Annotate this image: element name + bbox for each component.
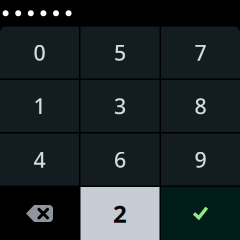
button[interactable]: 3: [80, 80, 159, 132]
staticText: 0: [33, 38, 45, 67]
button[interactable]: 5: [80, 26, 159, 78]
staticText: 1: [33, 92, 45, 120]
button[interactable]: 4: [0, 133, 79, 185]
staticText: 7: [194, 38, 206, 67]
staticText: 2: [113, 198, 127, 229]
staticText: 4: [33, 145, 45, 174]
button[interactable]: 8: [161, 80, 240, 132]
staticText: 3: [114, 92, 126, 120]
staticText: 9: [194, 145, 206, 174]
button[interactable]: Delete: [0, 187, 79, 240]
button[interactable]: 1: [0, 80, 79, 132]
button[interactable]: 2: [80, 187, 159, 240]
staticText: 5: [114, 38, 126, 67]
staticText: 8: [194, 92, 206, 120]
button[interactable]: 6: [80, 133, 159, 185]
button[interactable]: 0: [0, 26, 79, 78]
button[interactable]: Confirm: [161, 187, 240, 240]
button[interactable]: 9: [161, 133, 240, 185]
staticText: 6: [114, 145, 126, 174]
button[interactable]: 7: [161, 26, 240, 78]
